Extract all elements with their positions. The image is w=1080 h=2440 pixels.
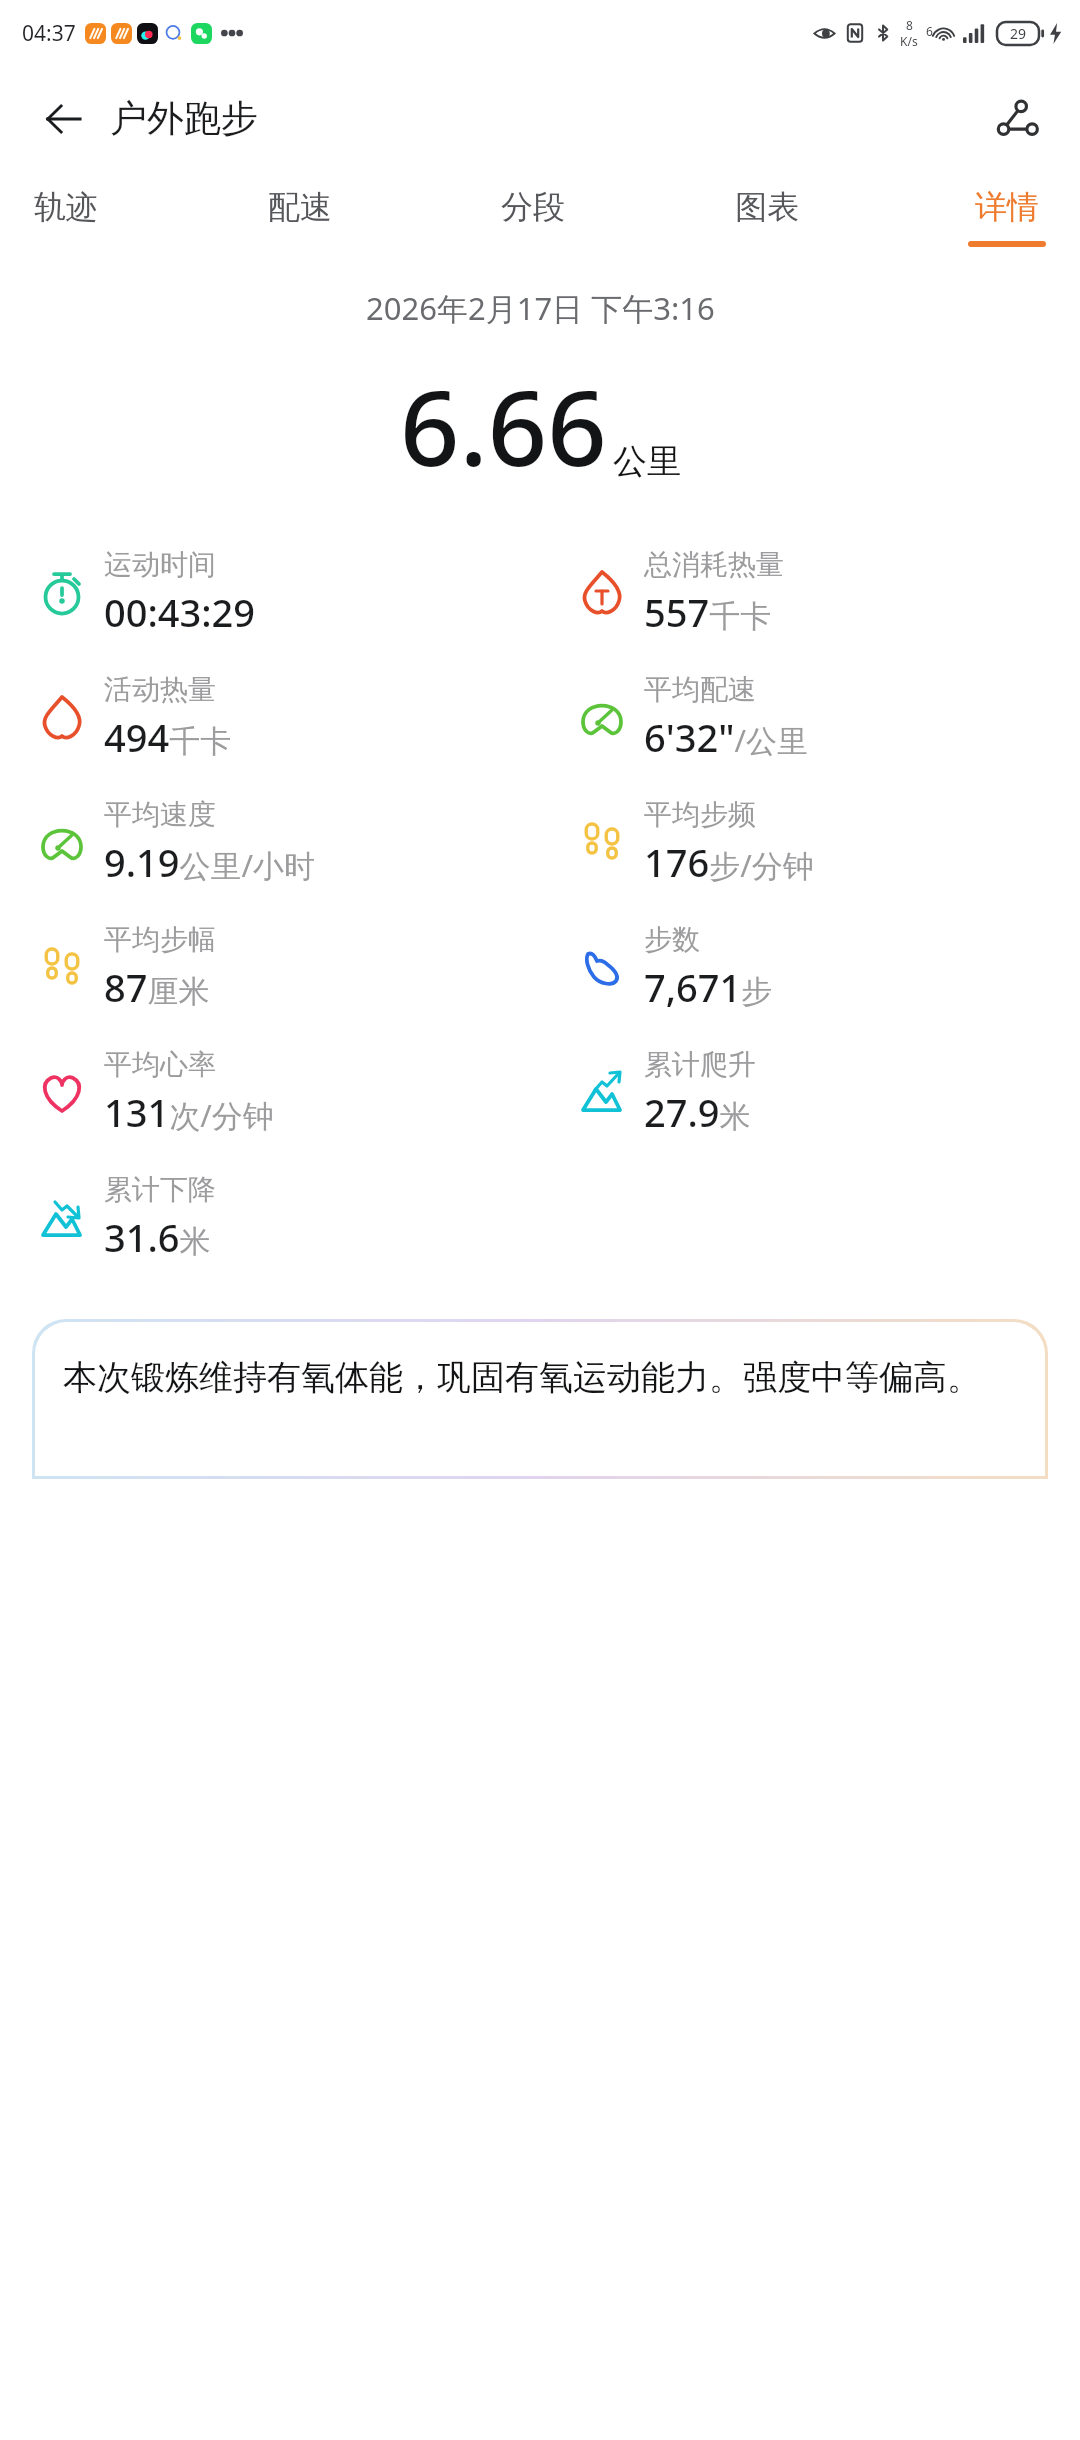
button[interactable]: 轨迹 bbox=[26, 181, 106, 253]
staticText: 户外跑步 bbox=[110, 95, 258, 142]
staticText: 累计爬升 bbox=[644, 1047, 756, 1082]
button[interactable]: 平均配速 bbox=[540, 666, 1080, 769]
button[interactable]: 分段 bbox=[493, 181, 573, 253]
button[interactable]: 平均步频 bbox=[540, 791, 1080, 894]
button[interactable]: Back bbox=[30, 86, 96, 152]
staticText: 9.19公里/小时 bbox=[104, 836, 316, 888]
staticText: 累计下降 bbox=[104, 1172, 216, 1207]
staticText: 6.66 bbox=[400, 355, 607, 497]
staticText: 平均心率 bbox=[104, 1047, 216, 1082]
staticText: 6'32"/公里 bbox=[644, 711, 809, 763]
staticText: 活动热量 bbox=[104, 672, 216, 707]
button[interactable]: 累计爬升 bbox=[540, 1041, 1080, 1144]
staticText: 557千卡 bbox=[644, 586, 772, 638]
staticText: 配速 bbox=[268, 187, 332, 227]
button[interactable]: 活动热量 bbox=[0, 666, 540, 769]
button[interactable]: 配速 bbox=[260, 181, 340, 253]
staticText: 详情 bbox=[975, 187, 1039, 227]
staticText: 131次/分钟 bbox=[104, 1086, 274, 1138]
staticText: 494千卡 bbox=[104, 711, 232, 763]
staticText: 31.6米 bbox=[104, 1211, 211, 1263]
button[interactable]: 平均心率 bbox=[0, 1041, 540, 1144]
button[interactable]: 总消耗热量 bbox=[540, 541, 1080, 644]
staticText: 平均速度 bbox=[104, 797, 216, 832]
staticText: 00:43:29 bbox=[104, 586, 256, 638]
button[interactable]: 平均速度 bbox=[0, 791, 540, 894]
staticText: 步数 bbox=[644, 922, 700, 957]
staticText: 运动时间 bbox=[104, 547, 216, 582]
button[interactable]: 详情 bbox=[960, 181, 1054, 253]
staticText: 分段 bbox=[501, 187, 565, 227]
button[interactable]: 步数 bbox=[540, 916, 1080, 1019]
staticText: 平均步频 bbox=[644, 797, 756, 832]
staticText: K/s bbox=[900, 33, 918, 49]
staticText: 本次锻炼维持有氧体能，巩固有氧运动能力。强度中等偏高。 bbox=[63, 1356, 981, 1399]
staticText: 总消耗热量 bbox=[644, 547, 784, 582]
staticText: 2026年2月17日 下午3:16 bbox=[366, 287, 715, 329]
button[interactable]: 累计下降 bbox=[0, 1166, 540, 1269]
staticText: 29 bbox=[1010, 24, 1027, 43]
staticText: 04:37 bbox=[22, 19, 76, 48]
staticText: 27.9米 bbox=[644, 1086, 751, 1138]
staticText: 6 bbox=[926, 23, 933, 39]
button[interactable]: 图表 bbox=[727, 181, 807, 253]
staticText: 176步/分钟 bbox=[644, 836, 814, 888]
staticText: 平均步幅 bbox=[104, 922, 216, 957]
staticText: 轨迹 bbox=[34, 187, 98, 227]
button[interactable]: 运动时间 bbox=[0, 541, 540, 644]
staticText: 图表 bbox=[735, 187, 799, 227]
button[interactable]: 平均步幅 bbox=[0, 916, 540, 1019]
staticText: 平均配速 bbox=[644, 672, 756, 707]
button[interactable]: Share bbox=[984, 86, 1050, 152]
staticText: 7,671步 bbox=[644, 961, 773, 1013]
staticText: 8 bbox=[906, 17, 913, 33]
button[interactable]: 本次锻炼维持有氧体能，巩固有氧运动能力。强度中等偏高。 bbox=[35, 1322, 1045, 1476]
staticText: 公里 bbox=[613, 440, 681, 483]
staticText: 87厘米 bbox=[104, 961, 210, 1013]
